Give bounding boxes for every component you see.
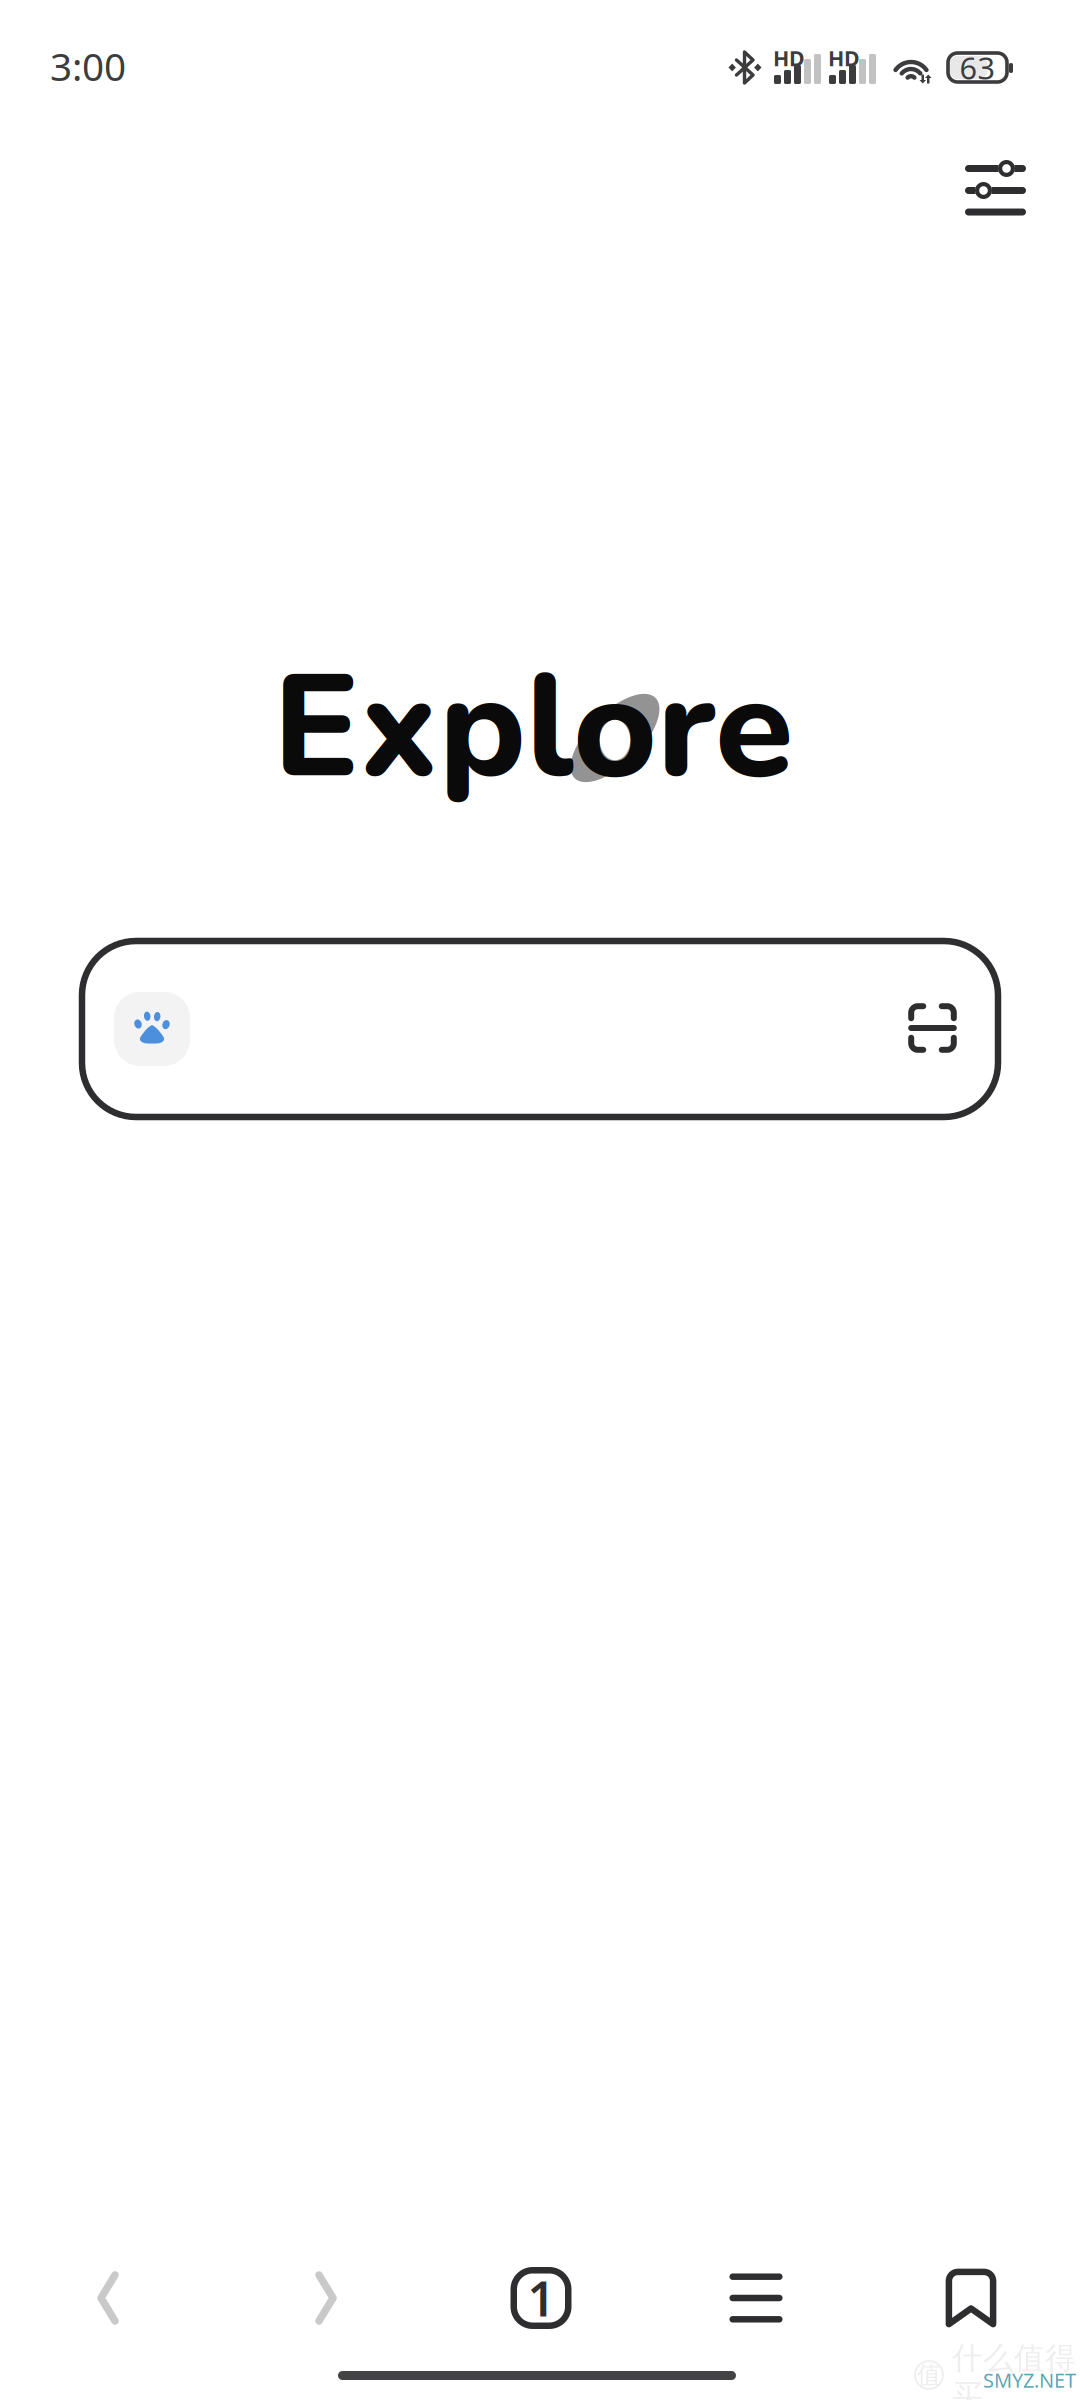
- staticText: HD: [828, 44, 860, 72]
- staticText: SMYZ.NET: [983, 2367, 1076, 2393]
- staticText: HD: [773, 44, 805, 72]
- staticText: 63: [959, 47, 995, 88]
- staticText: 1: [527, 2266, 554, 2330]
- button[interactable]: Bookmarks: [911, 2240, 1031, 2356]
- button[interactable]: Forward: [266, 2240, 386, 2356]
- button[interactable]: Settings: [940, 130, 1052, 242]
- button[interactable]: Tabs: [481, 2240, 601, 2356]
- staticText: 什么值得买: [952, 2339, 1076, 2400]
- button[interactable]: Back: [48, 2240, 168, 2356]
- staticText: 3:00: [50, 40, 126, 92]
- button[interactable]: [82, 941, 998, 1117]
- staticText: 值: [917, 2360, 941, 2390]
- staticText: Explore: [273, 631, 793, 826]
- button[interactable]: Menu: [696, 2240, 816, 2356]
